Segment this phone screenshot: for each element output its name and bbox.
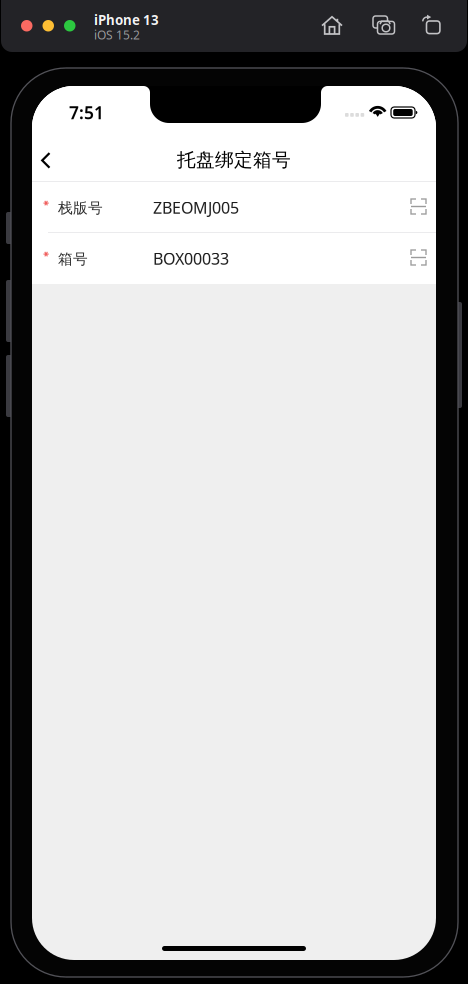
button[interactable]: 箱号 bbox=[32, 233, 436, 284]
button[interactable]: Screenshot bbox=[366, 9, 402, 41]
staticText: iOS 15.2 bbox=[94, 27, 140, 43]
staticText: 箱号 bbox=[58, 250, 88, 268]
staticText: ZBEOMJ005 bbox=[153, 197, 239, 218]
button[interactable]: Rotate bbox=[415, 8, 447, 41]
staticText: 7:51 bbox=[69, 101, 104, 124]
staticText: 托盘绑定箱号 bbox=[177, 148, 291, 171]
button[interactable]: Home bbox=[315, 9, 349, 41]
button[interactable]: Back bbox=[28, 139, 64, 182]
staticText: BOX00033 bbox=[153, 248, 229, 269]
staticText: 栈版号 bbox=[58, 199, 103, 217]
button[interactable]: 栈版号 bbox=[32, 182, 436, 233]
staticText: iPhone 13 bbox=[94, 11, 159, 29]
